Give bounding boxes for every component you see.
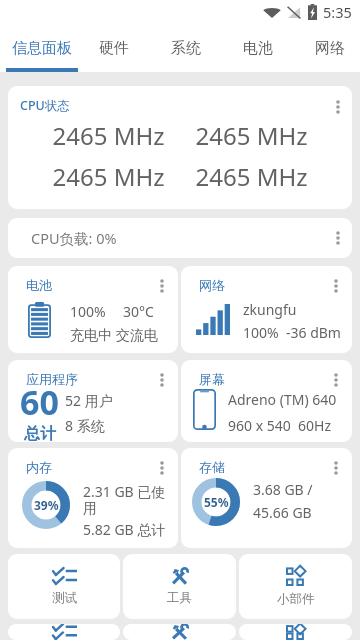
button[interactable]: More options (152, 370, 172, 390)
button[interactable]: 内存 (8, 448, 178, 548)
button[interactable]: 信息面板 (6, 24, 78, 72)
button[interactable]: 网络 (181, 266, 352, 353)
button[interactable]: CPU负载: 0% (8, 218, 352, 258)
button[interactable]: 硬件 (78, 24, 150, 72)
staticText: 系统 (171, 39, 201, 58)
staticText: 100% (70, 302, 106, 321)
staticText: 测试 (52, 590, 77, 606)
staticText: 3.68 GB / (253, 480, 313, 499)
staticText: 屏幕 (199, 371, 225, 387)
staticText: 39% (34, 497, 59, 513)
staticText: 960 x 540 60Hz (228, 416, 331, 435)
button[interactable]: More options (328, 228, 348, 248)
staticText: 5:35 (323, 2, 352, 22)
staticText: 总计 (24, 424, 56, 442)
button[interactable]: 存储 (181, 448, 352, 548)
button[interactable]: More options (328, 97, 348, 117)
staticText: 2465 MHz (37, 160, 180, 193)
staticText: 存储 (199, 459, 225, 475)
staticText: 30°C (123, 302, 154, 321)
staticText: 信息面板 (12, 39, 72, 58)
staticText: 网络 (199, 277, 225, 293)
staticText: 2465 MHz (180, 160, 323, 193)
staticText: 工具 (167, 590, 192, 606)
staticText: 硬件 (99, 39, 129, 58)
staticText: 100% (243, 323, 279, 342)
staticText: 55% (204, 494, 229, 510)
other: Battery charging (307, 4, 318, 20)
staticText: 小部件 (277, 591, 315, 607)
staticText: 60 (20, 379, 59, 425)
staticText: 52 用户 (65, 391, 113, 410)
button[interactable]: 工具 (123, 554, 236, 619)
staticText: 45.66 GB (253, 503, 312, 522)
button[interactable]: 小部件 (239, 554, 352, 619)
staticText: 8 系统 (65, 416, 105, 435)
button[interactable]: 关于 (239, 624, 352, 640)
button[interactable]: More options (326, 370, 346, 390)
staticText: zkungfu (243, 300, 297, 319)
staticText: 2465 MHz (37, 119, 180, 152)
staticText: CPU负载: 0% (31, 228, 117, 248)
other: No signal (287, 6, 301, 19)
button[interactable]: CPU状态 (8, 86, 352, 209)
button[interactable]: More options (152, 276, 172, 296)
staticText: 电池 (243, 39, 273, 58)
button[interactable]: 系统 (150, 24, 222, 72)
button[interactable]: 网络 (294, 24, 360, 72)
button[interactable]: 电池 (8, 266, 178, 353)
staticText: 充电中 交流电 (70, 325, 158, 344)
button[interactable]: 应用程序 (8, 360, 178, 442)
button[interactable]: 测试 (8, 554, 120, 619)
staticText: CPU状态 (20, 97, 70, 114)
staticText: 2.31 GB 已使用 (83, 482, 178, 517)
staticText: 电池 (26, 277, 52, 293)
staticText: Adreno (TM) 640 (228, 390, 337, 409)
staticText: 应用程序 (26, 371, 78, 387)
staticText: 5.82 GB 总计 (83, 520, 166, 539)
button[interactable]: 信息 (8, 624, 120, 640)
button[interactable]: More options (326, 458, 346, 478)
staticText: 网络 (315, 39, 345, 58)
button[interactable]: More options (326, 276, 346, 296)
staticText: 内存 (26, 459, 52, 475)
button[interactable]: 设置 (123, 624, 236, 640)
other: Wi-Fi (263, 6, 281, 19)
button[interactable]: 屏幕 (181, 360, 352, 442)
button[interactable]: 电池 (222, 24, 294, 72)
button[interactable]: More options (152, 458, 172, 478)
staticText: 2465 MHz (180, 119, 323, 152)
staticText: -36 dBm (286, 323, 341, 342)
